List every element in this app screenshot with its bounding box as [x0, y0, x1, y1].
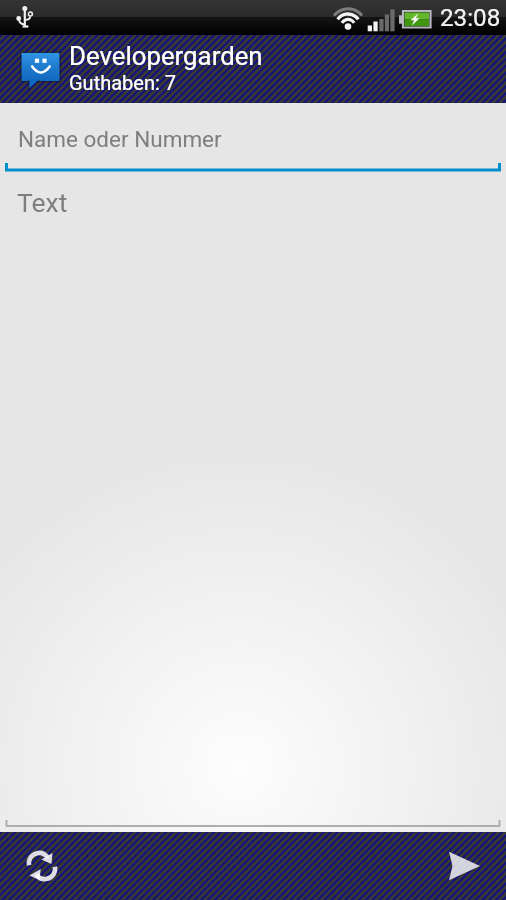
staticText: Name oder Nummer: [18, 126, 222, 152]
button[interactable]: Text: [0, 173, 506, 832]
staticText: 23:08: [440, 4, 501, 32]
staticText: Text: [17, 187, 68, 218]
button[interactable]: Aktualisieren: [0, 832, 84, 900]
button[interactable]: Developergarden: [0, 35, 506, 103]
button[interactable]: Senden: [422, 832, 506, 900]
staticText: Guthaben: 7: [69, 71, 177, 94]
staticText: Developergarden: [69, 41, 263, 71]
button[interactable]: Name oder Nummer: [0, 103, 506, 173]
